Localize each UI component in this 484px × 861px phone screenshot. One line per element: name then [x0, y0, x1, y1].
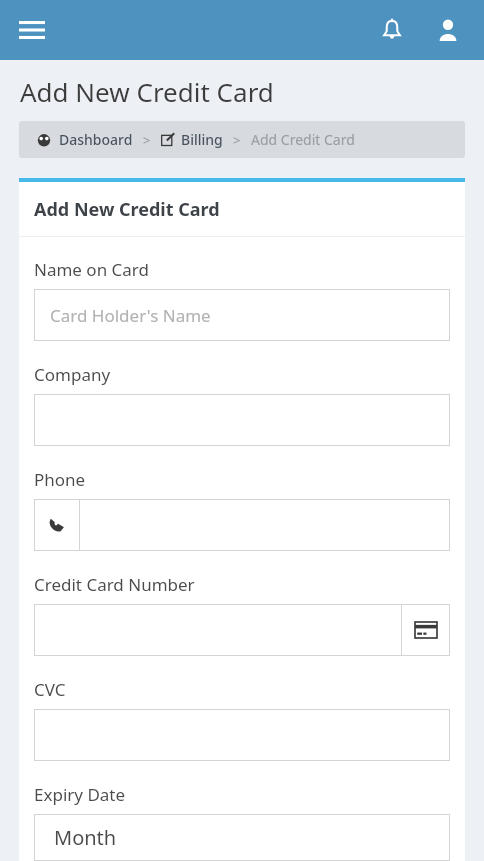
staticText: Add New Credit Card — [34, 197, 220, 222]
button[interactable] — [34, 394, 450, 446]
staticText: Billing — [181, 130, 223, 149]
button[interactable] — [34, 604, 450, 656]
staticText: Company — [34, 363, 111, 386]
staticText: > — [233, 131, 241, 149]
button[interactable]: Month — [34, 814, 450, 861]
staticText: Card Holder's Name — [50, 304, 211, 327]
button[interactable] — [34, 499, 450, 551]
staticText: Dashboard — [59, 130, 133, 149]
button[interactable]: Menu — [12, 10, 52, 50]
staticText: Month — [54, 824, 117, 851]
staticText: Add Credit Card — [251, 130, 355, 149]
button[interactable]: Profile — [428, 10, 468, 50]
staticText: Phone — [34, 468, 86, 491]
button[interactable]: Notifications — [370, 8, 414, 52]
staticText: Name on Card — [34, 258, 149, 281]
button[interactable]: Card Holder's Name — [34, 289, 450, 341]
button[interactable]: Dashboard — [37, 130, 133, 149]
staticText: Add New Credit Card — [20, 74, 274, 109]
staticText: > — [143, 131, 151, 149]
staticText: Expiry Date — [34, 783, 126, 806]
staticText: CVC — [34, 678, 66, 701]
button[interactable] — [34, 709, 450, 761]
button[interactable]: Billing — [161, 130, 223, 149]
staticText: Credit Card Number — [34, 573, 195, 596]
